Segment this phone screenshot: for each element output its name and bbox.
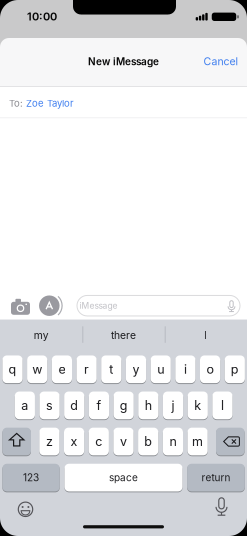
staticText: j (171, 398, 174, 413)
button[interactable]: Apps (38, 294, 67, 320)
staticText: e (58, 362, 65, 377)
staticText: there (111, 329, 136, 341)
staticText: Cancel (203, 55, 238, 68)
button[interactable]: m (187, 428, 208, 455)
staticText: I (204, 329, 207, 341)
staticText: l (221, 398, 224, 413)
staticText: z (46, 434, 53, 449)
staticText: b (144, 434, 152, 449)
button[interactable]: my (1, 320, 81, 351)
button[interactable]: k (188, 391, 208, 419)
button[interactable]: Cancel (203, 55, 238, 68)
button[interactable]: z (39, 428, 59, 455)
button[interactable]: d (64, 391, 84, 419)
button[interactable]: p (225, 355, 245, 383)
button[interactable]: x (64, 428, 84, 455)
button[interactable]: Delete (216, 428, 245, 455)
button[interactable]: b (138, 428, 158, 455)
staticText: r (84, 362, 89, 377)
staticText: v (120, 434, 127, 449)
button[interactable]: y (126, 355, 146, 383)
button[interactable]: space (64, 464, 182, 491)
staticText: 10:00 (27, 10, 57, 23)
button[interactable]: 123 (2, 464, 60, 491)
staticText: return (201, 472, 230, 484)
button[interactable]: f (89, 391, 109, 419)
staticText: w (32, 362, 42, 377)
button[interactable]: g (114, 391, 134, 419)
button[interactable]: there (83, 320, 163, 351)
staticText: o (207, 362, 214, 377)
staticText: m (192, 434, 203, 449)
button[interactable]: w (27, 355, 47, 383)
button[interactable]: Emoji (17, 501, 33, 517)
button[interactable]: i (175, 355, 195, 383)
button[interactable]: return (187, 464, 245, 491)
staticText: h (145, 398, 152, 413)
staticText: Zoe Taylor (26, 98, 74, 109)
staticText: s (46, 398, 53, 413)
staticText: c (95, 434, 102, 449)
staticText: y (132, 362, 139, 377)
staticText: g (120, 398, 128, 413)
staticText: k (194, 398, 201, 413)
staticText: q (8, 362, 16, 377)
button[interactable]: Dictation (213, 498, 229, 517)
button[interactable]: Shift (2, 428, 31, 455)
button[interactable]: r (76, 355, 97, 383)
button[interactable]: a (15, 391, 35, 419)
button[interactable]: l (212, 391, 232, 419)
staticText: iMessage (79, 301, 117, 311)
button[interactable]: n (163, 428, 183, 455)
button[interactable]: s (39, 391, 60, 419)
button[interactable]: Camera (11, 298, 30, 315)
staticText: 123 (23, 472, 39, 484)
staticText: d (70, 398, 78, 413)
staticText: space (109, 472, 138, 484)
button[interactable]: j (163, 391, 183, 419)
button[interactable]: v (113, 428, 134, 455)
button[interactable]: e (52, 355, 72, 383)
staticText: my (34, 329, 49, 341)
staticText: p (231, 362, 239, 377)
button[interactable]: t (101, 355, 121, 383)
staticText: To: (9, 98, 23, 109)
staticText: f (96, 398, 101, 413)
staticText: n (169, 434, 176, 449)
button[interactable]: q (2, 355, 23, 383)
staticText: u (157, 362, 164, 377)
button[interactable]: o (200, 355, 220, 383)
button[interactable]: I (166, 320, 246, 351)
staticText: t (109, 362, 113, 377)
staticText: New iMessage (88, 55, 159, 68)
button[interactable]: c (89, 428, 109, 455)
staticText: i (184, 362, 187, 377)
staticText: x (71, 434, 78, 449)
button[interactable]: u (151, 355, 171, 383)
button[interactable]: h (138, 391, 158, 419)
button[interactable]: iMessage (77, 295, 240, 316)
staticText: a (21, 398, 28, 413)
button[interactable]: Zoe Taylor (26, 98, 74, 109)
